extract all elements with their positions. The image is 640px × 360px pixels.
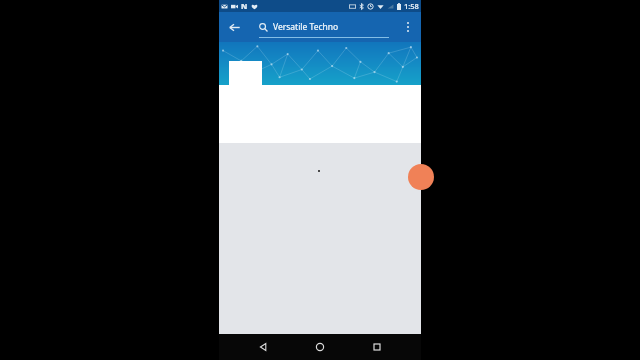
staticText: 1:58	[404, 1, 419, 11]
button[interactable]: Home	[307, 334, 333, 360]
button[interactable]: More options	[395, 14, 421, 40]
button[interactable]: Add	[408, 164, 434, 190]
staticText: N	[241, 1, 248, 11]
staticText: Versatile Techno	[273, 21, 339, 33]
button[interactable]: Back	[250, 334, 276, 360]
button[interactable]: Back	[219, 12, 249, 42]
button[interactable]: Recent apps	[364, 334, 390, 360]
button[interactable]: Versatile Techno	[249, 12, 395, 42]
